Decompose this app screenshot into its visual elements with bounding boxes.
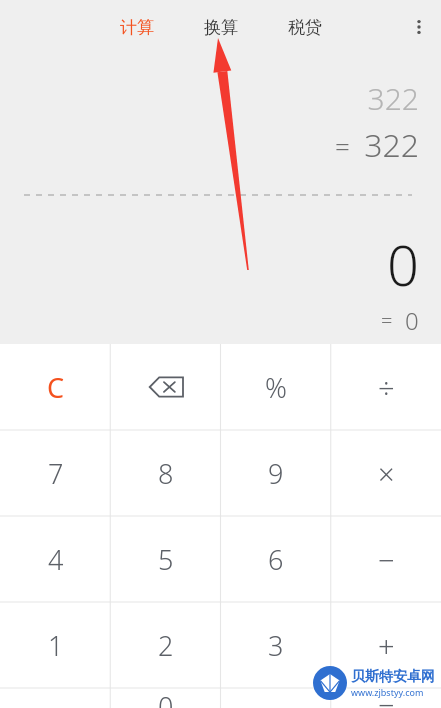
button[interactable]: − bbox=[331, 516, 441, 602]
button[interactable]: = bbox=[331, 688, 441, 708]
button[interactable]: 9 bbox=[221, 430, 331, 516]
button[interactable]: 0 bbox=[111, 688, 221, 708]
staticText: 1 bbox=[48, 627, 64, 664]
button[interactable]: % bbox=[221, 344, 331, 430]
staticText: 贝斯特安卓网 bbox=[351, 668, 435, 686]
staticText: 换算 bbox=[204, 17, 238, 38]
staticText: ÷ bbox=[378, 368, 395, 407]
staticText: 0 bbox=[405, 304, 419, 337]
staticText: 计算 bbox=[120, 17, 154, 38]
button[interactable]: × bbox=[331, 430, 441, 516]
button[interactable]: ÷ bbox=[331, 344, 441, 430]
staticText: = bbox=[381, 307, 393, 334]
staticText: 4 bbox=[48, 541, 64, 578]
button[interactable] bbox=[0, 688, 111, 708]
staticText: 7 bbox=[48, 455, 64, 492]
staticText: = bbox=[378, 688, 395, 708]
button[interactable]: 8 bbox=[111, 430, 221, 516]
button[interactable]: 4 bbox=[0, 516, 111, 602]
button[interactable]: 5 bbox=[111, 516, 221, 602]
staticText: www.zjbstyy.com bbox=[351, 686, 424, 698]
button[interactable]: + bbox=[331, 602, 441, 688]
button[interactable]: 税贷 bbox=[278, 9, 332, 46]
button[interactable]: . bbox=[221, 688, 331, 708]
staticText: 322 bbox=[364, 123, 419, 167]
staticText: 2 bbox=[158, 627, 174, 664]
staticText: 9 bbox=[268, 455, 284, 492]
button[interactable]: 2 bbox=[111, 602, 221, 688]
staticText: 0 bbox=[158, 688, 174, 708]
button[interactable]: More options bbox=[397, 5, 441, 49]
staticText: % bbox=[265, 369, 287, 406]
staticText: + bbox=[378, 626, 395, 665]
staticText: − bbox=[378, 540, 395, 579]
staticText: 0 bbox=[387, 226, 419, 302]
button[interactable]: C bbox=[0, 344, 111, 430]
staticText: 税贷 bbox=[288, 17, 322, 38]
staticText: 3 bbox=[268, 627, 284, 664]
button[interactable]: 7 bbox=[0, 430, 111, 516]
button[interactable]: 3 bbox=[221, 602, 331, 688]
staticText: 322 bbox=[367, 78, 419, 119]
button[interactable]: 计算 bbox=[110, 9, 164, 46]
button[interactable]: Backspace bbox=[111, 344, 221, 430]
staticText: = bbox=[335, 128, 350, 163]
button[interactable]: 换算 bbox=[194, 9, 248, 46]
staticText: C bbox=[47, 369, 65, 406]
staticText: 6 bbox=[268, 541, 284, 578]
button[interactable]: 1 bbox=[0, 602, 111, 688]
button[interactable]: 6 bbox=[221, 516, 331, 602]
staticText: × bbox=[378, 454, 395, 493]
staticText: 8 bbox=[158, 455, 174, 492]
staticText: 5 bbox=[158, 541, 174, 578]
